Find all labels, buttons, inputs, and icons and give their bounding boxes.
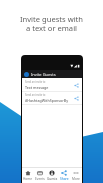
button[interactable]: More [70,168,82,183]
button[interactable]: Guests [46,168,58,183]
other: More [73,170,79,176]
button[interactable]: Share [58,168,70,183]
other: Share [61,170,67,176]
staticText: Send an invite to [25,93,46,97]
staticText: Events [35,177,45,181]
staticText: #HashtagWithSponsorBy [25,98,69,103]
button[interactable]: Send an invite to [22,92,82,104]
staticText: Invite guests with a text or email [0,14,103,34]
other: Events [37,170,43,176]
staticText: Text message [25,85,49,90]
staticText: Share [60,177,69,181]
other: Share [74,83,79,88]
staticText: Invite Guests [31,72,56,77]
button[interactable]: Events [34,168,46,183]
other: Share [74,96,79,101]
button[interactable]: Home [22,168,34,183]
staticText: Guests [47,177,58,181]
staticText: More [72,177,80,181]
staticText: Home [23,177,33,181]
other: Home [25,170,31,176]
other: Guests [49,170,55,176]
staticText: Send an invite to [25,80,46,84]
button[interactable]: Send an invite to [22,79,82,91]
button[interactable]: Invite Guests [22,70,82,78]
